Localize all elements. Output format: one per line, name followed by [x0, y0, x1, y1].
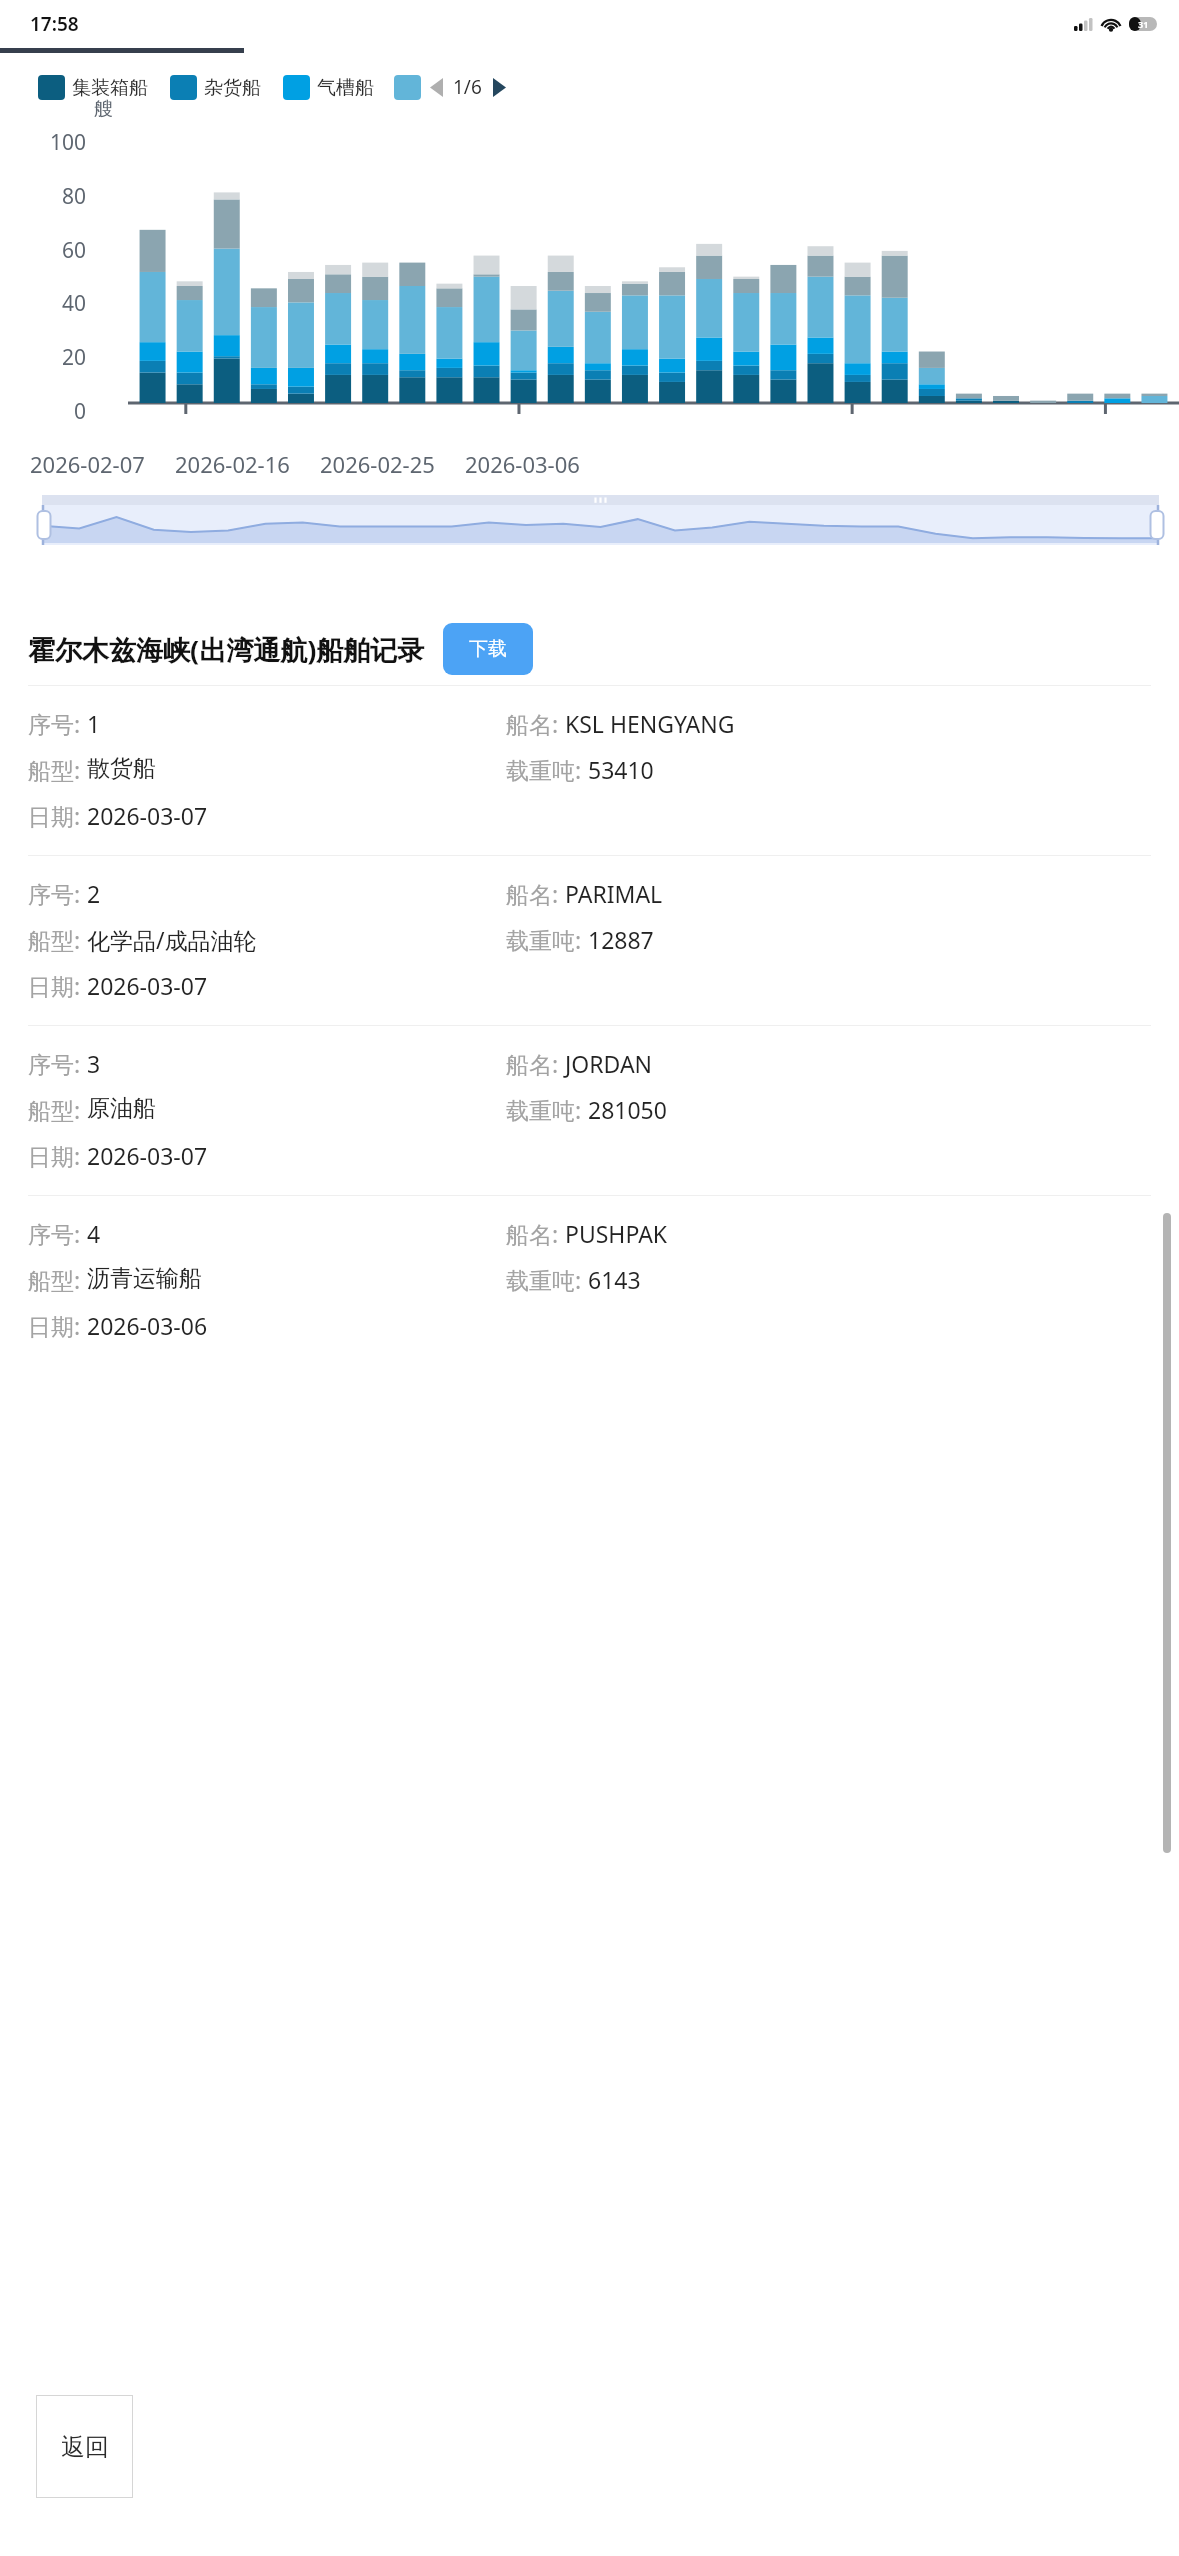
- staticText: 2026-03-07: [87, 800, 208, 831]
- staticText: 船名:: [506, 708, 565, 739]
- button[interactable]: 杂货船: [170, 75, 261, 100]
- staticText: 船名:: [506, 878, 565, 909]
- staticText: 船型:: [28, 754, 87, 785]
- staticText: 船型:: [28, 1094, 87, 1125]
- staticText: KSL HENGYANG: [565, 708, 735, 739]
- staticText: 2: [87, 878, 101, 909]
- staticText: 31: [1138, 18, 1149, 30]
- staticText: 序号:: [28, 878, 87, 909]
- button[interactable]: Next page: [488, 76, 510, 98]
- staticText: 日期:: [28, 1140, 87, 1171]
- staticText: 船型:: [28, 924, 87, 955]
- staticText: 日期:: [28, 800, 87, 831]
- button[interactable]: 返回: [36, 2395, 133, 2498]
- staticText: 集装箱船: [72, 76, 148, 100]
- staticText: 6143: [588, 1264, 641, 1295]
- button[interactable]: 序号:: [28, 1026, 1151, 1195]
- staticText: 2026-03-07: [87, 1140, 208, 1171]
- staticText: 3: [87, 1048, 101, 1079]
- staticText: 60: [20, 236, 86, 265]
- staticText: 281050: [588, 1094, 667, 1125]
- staticText: 53410: [588, 754, 654, 785]
- staticText: 1/6: [453, 74, 482, 100]
- staticText: 船型:: [28, 1264, 87, 1295]
- staticText: 日期:: [28, 1310, 87, 1341]
- staticText: 霍尔木兹海峡(出湾通航)船舶记录: [28, 631, 425, 668]
- staticText: 下载: [469, 637, 507, 661]
- staticText: 0: [20, 397, 86, 426]
- button[interactable]: 气槽船: [283, 75, 374, 100]
- staticText: 80: [20, 182, 86, 211]
- staticText: 2026-02-25: [320, 449, 435, 479]
- staticText: 17:58: [30, 11, 79, 37]
- staticText: 序号:: [28, 1218, 87, 1249]
- staticText: 船名:: [506, 1048, 565, 1079]
- staticText: PARIMAL: [565, 878, 663, 909]
- staticText: 2026-02-07: [30, 449, 145, 479]
- staticText: 船名:: [506, 1218, 565, 1249]
- button[interactable]: Time range selector: [42, 495, 1159, 545]
- button[interactable]: 集装箱船: [38, 75, 148, 100]
- staticText: 载重吨:: [506, 924, 588, 955]
- staticText: 序号:: [28, 708, 87, 739]
- staticText: 序号:: [28, 1048, 87, 1079]
- staticText: 12887: [588, 924, 654, 955]
- staticText: 2026-03-06: [465, 449, 580, 479]
- staticText: JORDAN: [565, 1048, 653, 1079]
- button[interactable]: 序号:: [28, 686, 1151, 855]
- staticText: 4: [87, 1218, 101, 1249]
- staticText: 2026-02-16: [175, 449, 290, 479]
- staticText: 载重吨:: [506, 754, 588, 785]
- staticText: 2026-03-06: [87, 1310, 208, 1341]
- staticText: 杂货船: [204, 76, 261, 100]
- staticText: PUSHPAK: [565, 1218, 668, 1249]
- staticText: 载重吨:: [506, 1094, 588, 1125]
- staticText: 沥青运输船: [87, 1264, 202, 1293]
- button[interactable]: 序号:: [28, 856, 1151, 1025]
- staticText: 载重吨:: [506, 1264, 588, 1295]
- staticText: 20: [20, 343, 86, 372]
- staticText: 气槽船: [317, 76, 374, 100]
- staticText: 返回: [61, 2432, 109, 2462]
- staticText: 100: [20, 128, 86, 157]
- button[interactable]: Previous page: [425, 76, 447, 98]
- staticText: 化学品/成品油轮: [87, 924, 257, 955]
- staticText: 散货船: [87, 754, 156, 783]
- button[interactable]: 序号:: [28, 1196, 1151, 1365]
- staticText: 日期:: [28, 970, 87, 1001]
- button[interactable]: 下载: [443, 623, 533, 675]
- staticText: 1: [87, 708, 101, 739]
- staticText: 原油船: [87, 1094, 156, 1123]
- staticText: 艘: [94, 97, 113, 121]
- staticText: 2026-03-07: [87, 970, 208, 1001]
- staticText: 40: [20, 289, 86, 318]
